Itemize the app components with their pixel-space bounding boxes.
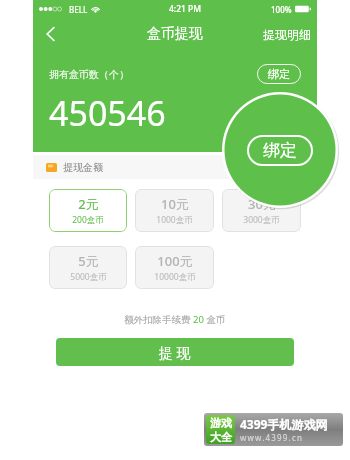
- button[interactable]: 提 现: [56, 338, 294, 366]
- staticText: 绑定: [268, 67, 290, 81]
- staticText: 100元: [157, 252, 193, 270]
- staticText: 5元: [78, 252, 99, 270]
- button[interactable]: 10元: [135, 189, 214, 232]
- staticText: 大全: [210, 430, 232, 444]
- button[interactable]: 绑定: [257, 64, 301, 84]
- staticText: 20: [193, 313, 204, 326]
- staticText: 游戏: [210, 416, 232, 430]
- button[interactable]: 100元: [135, 246, 214, 289]
- staticText: 450546: [49, 90, 166, 136]
- staticText: www.4399.cn: [240, 432, 304, 443]
- staticText: 100%: [271, 4, 292, 15]
- staticText: 10元: [161, 195, 189, 213]
- staticText: 3000盒币: [243, 214, 280, 226]
- staticText: 2元: [78, 195, 99, 213]
- staticText: 提现金额: [63, 161, 103, 174]
- staticText: 200盒币: [72, 214, 104, 226]
- button[interactable]: Back: [33, 18, 69, 50]
- staticText: 拥有盒币数（个）: [49, 68, 129, 81]
- staticText: 提现明细: [263, 27, 311, 42]
- staticText: 额外扣除手续费: [124, 313, 193, 326]
- staticText: 绑定: [263, 140, 297, 161]
- staticText: 30元: [248, 195, 276, 213]
- staticText: 4:21 PM: [169, 3, 202, 15]
- staticText: BELL: [69, 4, 88, 15]
- button[interactable]: 5元: [49, 246, 127, 289]
- staticText: 5000盒币: [70, 271, 107, 283]
- button[interactable]: 提现明细: [263, 27, 311, 42]
- staticText: 1000盒币: [156, 214, 193, 226]
- staticText: 提现说明>: [270, 433, 312, 445]
- button[interactable]: 绑定: [247, 135, 313, 166]
- staticText: 4399手机游戏网: [240, 416, 328, 432]
- button[interactable]: 2元: [49, 189, 127, 232]
- button[interactable]: 提现说明>: [270, 433, 312, 445]
- staticText: 提 现: [159, 343, 191, 362]
- staticText: 盒币提现: [147, 25, 203, 43]
- button[interactable]: 30元: [222, 189, 301, 232]
- staticText: 10000盒币: [154, 271, 196, 283]
- staticText: 盒币: [204, 313, 226, 326]
